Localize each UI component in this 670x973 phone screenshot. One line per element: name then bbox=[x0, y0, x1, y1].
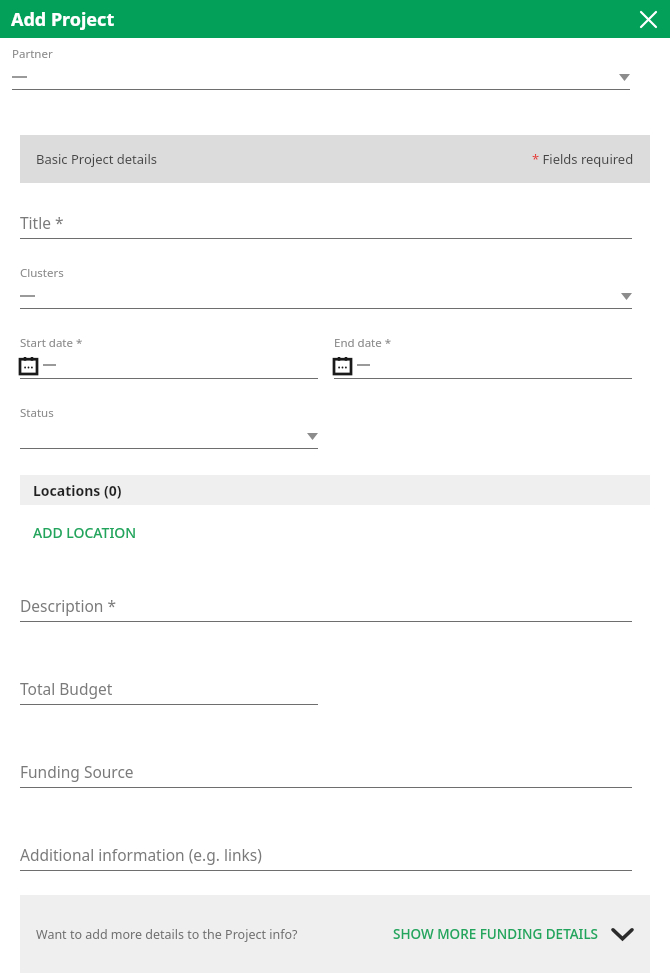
staticText: Start date * bbox=[20, 335, 83, 351]
button[interactable]: End date * bbox=[334, 335, 632, 379]
button[interactable]: Description * bbox=[20, 595, 632, 622]
button[interactable]: ADD LOCATION bbox=[22, 517, 148, 548]
button[interactable]: Status bbox=[20, 405, 318, 449]
staticText: Total Budget bbox=[20, 678, 113, 699]
staticText: Clusters bbox=[20, 265, 64, 281]
staticText: Additional information (e.g. links) bbox=[20, 844, 262, 865]
staticText: * Fields required bbox=[532, 150, 634, 168]
staticText: ADD LOCATION bbox=[33, 523, 137, 542]
staticText: Basic Project details bbox=[36, 150, 158, 168]
staticText: Locations (0) bbox=[33, 481, 122, 500]
staticText: Status bbox=[20, 405, 54, 421]
staticText: Add Project bbox=[11, 7, 115, 32]
button[interactable]: Additional information (e.g. links) bbox=[20, 844, 632, 871]
staticText: Title * bbox=[20, 212, 64, 233]
button[interactable]: Clusters bbox=[20, 265, 632, 309]
button[interactable]: Title * bbox=[20, 212, 632, 239]
staticText: Funding Source bbox=[20, 761, 134, 782]
button[interactable]: Funding Source bbox=[20, 761, 632, 788]
staticText: End date * bbox=[334, 335, 392, 351]
button[interactable]: Start date * bbox=[20, 335, 318, 379]
button[interactable]: Partner bbox=[12, 46, 630, 90]
button[interactable]: SHOW MORE FUNDING DETAILS bbox=[387, 917, 638, 951]
staticText: Description * bbox=[20, 595, 116, 616]
staticText: Partner bbox=[12, 46, 53, 62]
staticText: SHOW MORE FUNDING DETAILS bbox=[393, 925, 599, 943]
staticText: Want to add more details to the Project … bbox=[36, 926, 298, 943]
button[interactable]: Total Budget bbox=[20, 678, 318, 705]
button[interactable]: Close bbox=[633, 4, 663, 34]
